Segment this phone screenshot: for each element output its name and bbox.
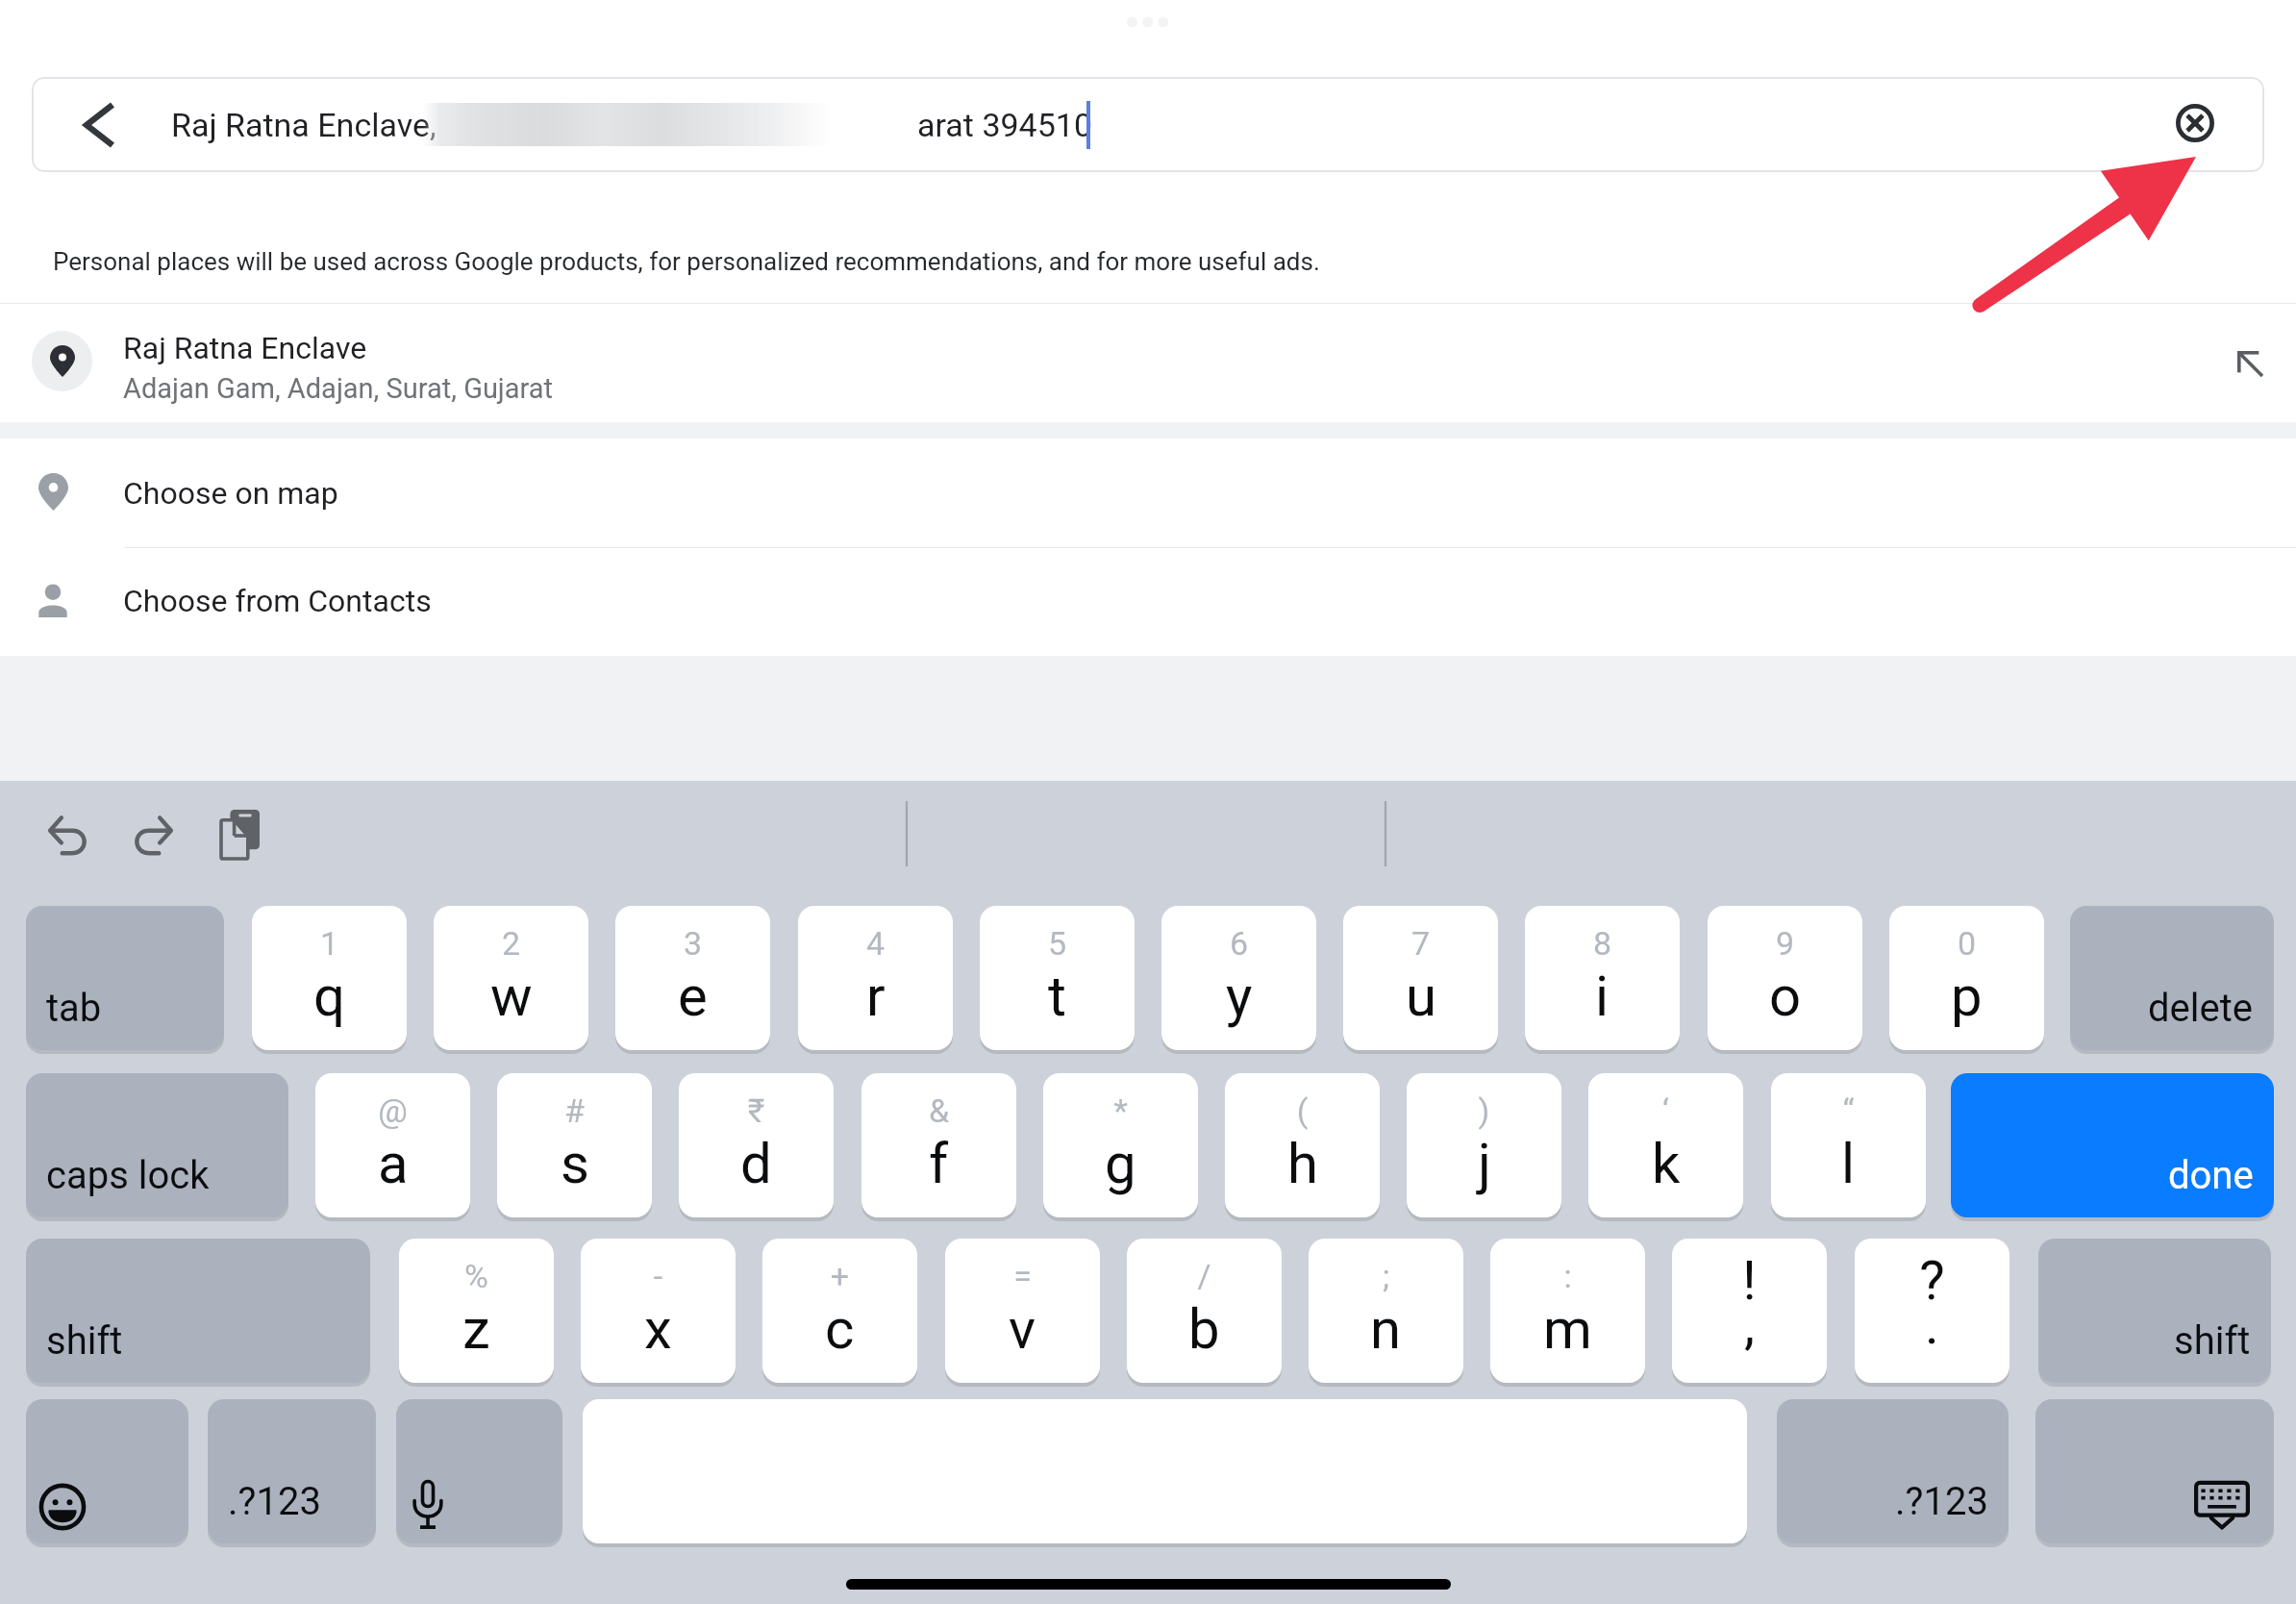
- button[interactable]: .?123: [1777, 1399, 2009, 1543]
- button[interactable]: done: [1951, 1073, 2274, 1217]
- button[interactable]: @: [315, 1073, 470, 1217]
- button[interactable]: Back: [53, 77, 143, 172]
- staticText: delete: [2148, 986, 2254, 1031]
- button[interactable]: /: [1127, 1239, 1282, 1383]
- staticText: 8: [1525, 924, 1680, 963]
- staticText: Raj Ratna Enclave,: [171, 106, 437, 144]
- staticText: w: [490, 964, 533, 1029]
- button[interactable]: =: [945, 1239, 1100, 1383]
- staticText: ?: [1855, 1249, 2009, 1313]
- staticText: 0: [1889, 924, 2044, 963]
- button[interactable]: 9: [1708, 906, 1862, 1050]
- staticText: b: [1188, 1296, 1220, 1362]
- button[interactable]: Redo: [133, 815, 173, 855]
- button[interactable]: Choose on map: [0, 439, 2296, 547]
- staticText: x: [644, 1296, 672, 1362]
- button[interactable]: shift: [2038, 1239, 2271, 1383]
- button[interactable]: ₹: [679, 1073, 834, 1217]
- button[interactable]: *: [1043, 1073, 1198, 1217]
- staticText: /: [1127, 1257, 1282, 1295]
- staticText: ): [1407, 1091, 1561, 1130]
- button[interactable]: tab: [26, 906, 224, 1050]
- staticText: g: [1105, 1131, 1136, 1196]
- staticText: y: [1226, 964, 1253, 1029]
- staticText: %: [399, 1257, 554, 1295]
- staticText: done: [2168, 1153, 2254, 1198]
- staticText: Personal places will be used across Goog…: [53, 247, 1320, 276]
- staticText: .?123: [1895, 1479, 1988, 1524]
- staticText: f: [929, 1131, 949, 1196]
- button[interactable]: 0: [1889, 906, 2044, 1050]
- staticText: -: [581, 1257, 736, 1295]
- button[interactable]: ;: [1309, 1239, 1463, 1383]
- staticText: ,: [1672, 1293, 1827, 1357]
- button[interactable]: Undo: [48, 815, 88, 855]
- staticText: 7: [1343, 924, 1498, 963]
- button[interactable]: 6: [1161, 906, 1316, 1050]
- button[interactable]: -: [581, 1239, 736, 1383]
- staticText: +: [762, 1257, 917, 1295]
- button[interactable]: (: [1225, 1073, 1380, 1217]
- staticText: o: [1769, 964, 1802, 1029]
- staticText: ‘: [1588, 1091, 1743, 1130]
- button[interactable]: ?: [1855, 1239, 2009, 1383]
- button[interactable]: delete: [2070, 906, 2274, 1050]
- staticText: 5: [980, 924, 1135, 963]
- staticText: =: [945, 1257, 1100, 1295]
- staticText: ₹: [679, 1091, 834, 1130]
- staticText: :: [1490, 1257, 1645, 1295]
- button[interactable]: Choose from Contacts: [0, 548, 2296, 656]
- button[interactable]: Raj Ratna Enclave: [0, 303, 2296, 422]
- button[interactable]: !: [1672, 1239, 1827, 1383]
- button[interactable]: 1: [252, 906, 407, 1050]
- button[interactable]: Use this suggestion: [2209, 338, 2267, 395]
- button[interactable]: 5: [980, 906, 1135, 1050]
- button[interactable]: ): [1407, 1073, 1561, 1217]
- staticText: (: [1225, 1091, 1380, 1130]
- staticText: j: [1478, 1131, 1491, 1196]
- button[interactable]: Clear text: [2149, 77, 2240, 170]
- button[interactable]: ‘: [1588, 1073, 1743, 1217]
- staticText: c: [825, 1296, 855, 1362]
- staticText: n: [1370, 1296, 1402, 1362]
- button[interactable]: shift: [26, 1239, 370, 1383]
- button[interactable]: 4: [798, 906, 953, 1050]
- button[interactable]: :: [1490, 1239, 1645, 1383]
- staticText: arat 394510: [917, 106, 1093, 144]
- button[interactable]: 3: [615, 906, 770, 1050]
- staticText: 9: [1708, 924, 1862, 963]
- staticText: .: [1855, 1293, 2009, 1357]
- button[interactable]: 8: [1525, 906, 1680, 1050]
- staticText: d: [740, 1131, 772, 1196]
- button[interactable]: Hide keyboard: [2035, 1399, 2274, 1543]
- button[interactable]: &: [861, 1073, 1016, 1217]
- staticText: “: [1771, 1091, 1926, 1130]
- staticText: r: [866, 964, 886, 1029]
- button[interactable]: caps lock: [26, 1073, 288, 1217]
- button[interactable]: Emoji: [26, 1399, 188, 1543]
- staticText: shift: [46, 1318, 123, 1364]
- staticText: 1: [252, 924, 407, 963]
- staticText: @: [315, 1091, 470, 1130]
- button[interactable]: Clipboard: [221, 810, 260, 859]
- staticText: q: [313, 964, 345, 1029]
- staticText: tab: [46, 986, 102, 1031]
- staticText: ;: [1309, 1257, 1463, 1295]
- staticText: Raj Ratna Enclave: [123, 330, 367, 366]
- staticText: 3: [615, 924, 770, 963]
- staticText: *: [1043, 1091, 1198, 1130]
- staticText: shift: [2174, 1318, 2251, 1364]
- button[interactable]: “: [1771, 1073, 1926, 1217]
- button[interactable]: 7: [1343, 906, 1498, 1050]
- button[interactable]: 2: [434, 906, 588, 1050]
- staticText: Choose from Contacts: [123, 583, 432, 619]
- button[interactable]: .?123: [208, 1399, 376, 1543]
- staticText: p: [1951, 964, 1983, 1029]
- button[interactable]: %: [399, 1239, 554, 1383]
- staticText: Choose on map: [123, 475, 338, 512]
- button[interactable]: Space: [583, 1399, 1747, 1543]
- button[interactable]: +: [762, 1239, 917, 1383]
- staticText: caps lock: [46, 1153, 210, 1198]
- button[interactable]: Dictate: [396, 1399, 562, 1543]
- button[interactable]: #: [497, 1073, 652, 1217]
